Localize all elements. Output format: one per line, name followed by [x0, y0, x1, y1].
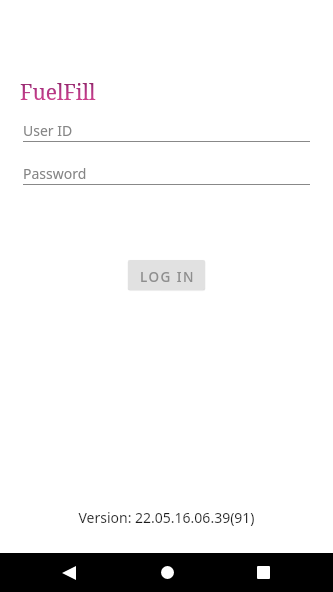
button[interactable]: Password [0, 156, 333, 188]
button[interactable]: LOG IN [128, 260, 205, 290]
staticText: Version: 22.05.16.06.39(91) [78, 508, 255, 527]
button[interactable]: Recent apps [244, 553, 282, 592]
button[interactable]: User ID [0, 113, 333, 145]
button[interactable]: Back [50, 553, 88, 592]
staticText: FuelFill [20, 78, 96, 107]
staticText: LOG IN [140, 268, 195, 286]
staticText: Password [23, 164, 87, 183]
staticText: User ID [23, 121, 73, 140]
button[interactable]: Home [148, 553, 186, 592]
